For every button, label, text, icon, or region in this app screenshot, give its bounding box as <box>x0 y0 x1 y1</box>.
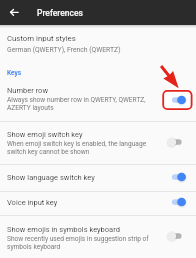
button[interactable]: Show emojis in symbols keyboard <box>0 215 196 258</box>
staticText: Show emoji switch key <box>7 130 83 139</box>
staticText: German (QWERTY), French (QWERTZ) <box>7 46 121 54</box>
staticText: Custom input styles <box>7 34 76 43</box>
staticText: Voice input key <box>7 198 58 207</box>
button[interactable]: Show emoji switch key <box>0 121 196 164</box>
button[interactable]: Show language switch key <box>0 164 196 191</box>
staticText: Show recently used emojis in suggestion … <box>7 235 159 251</box>
button[interactable]: Custom input styles <box>0 25 196 61</box>
staticText: Show emojis in symbols keyboard <box>7 225 120 234</box>
staticText: Keys <box>7 69 22 77</box>
button[interactable]: Number row <box>0 80 196 121</box>
button[interactable]: Voice input key <box>0 191 196 215</box>
button[interactable]: Navigate up <box>6 4 23 21</box>
staticText: When emoji switch key is enabled, the la… <box>7 140 159 156</box>
staticText: Show language switch key <box>7 173 95 182</box>
staticText: Preferences <box>37 8 83 18</box>
staticText: Number row <box>7 86 49 95</box>
staticText: Always show number row in QWERTY, QWERTZ… <box>7 96 159 112</box>
